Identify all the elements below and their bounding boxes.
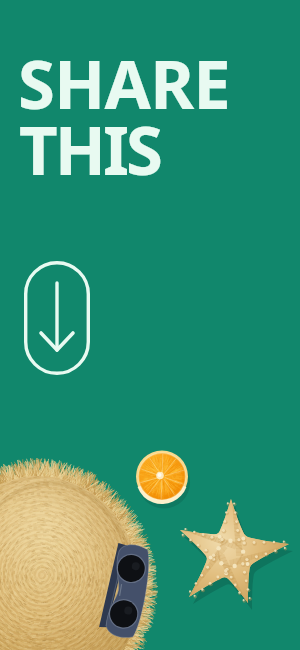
button[interactable]: Download bbox=[24, 261, 90, 375]
staticText: THIS bbox=[19, 103, 160, 194]
staticText: SHARE bbox=[18, 37, 231, 128]
